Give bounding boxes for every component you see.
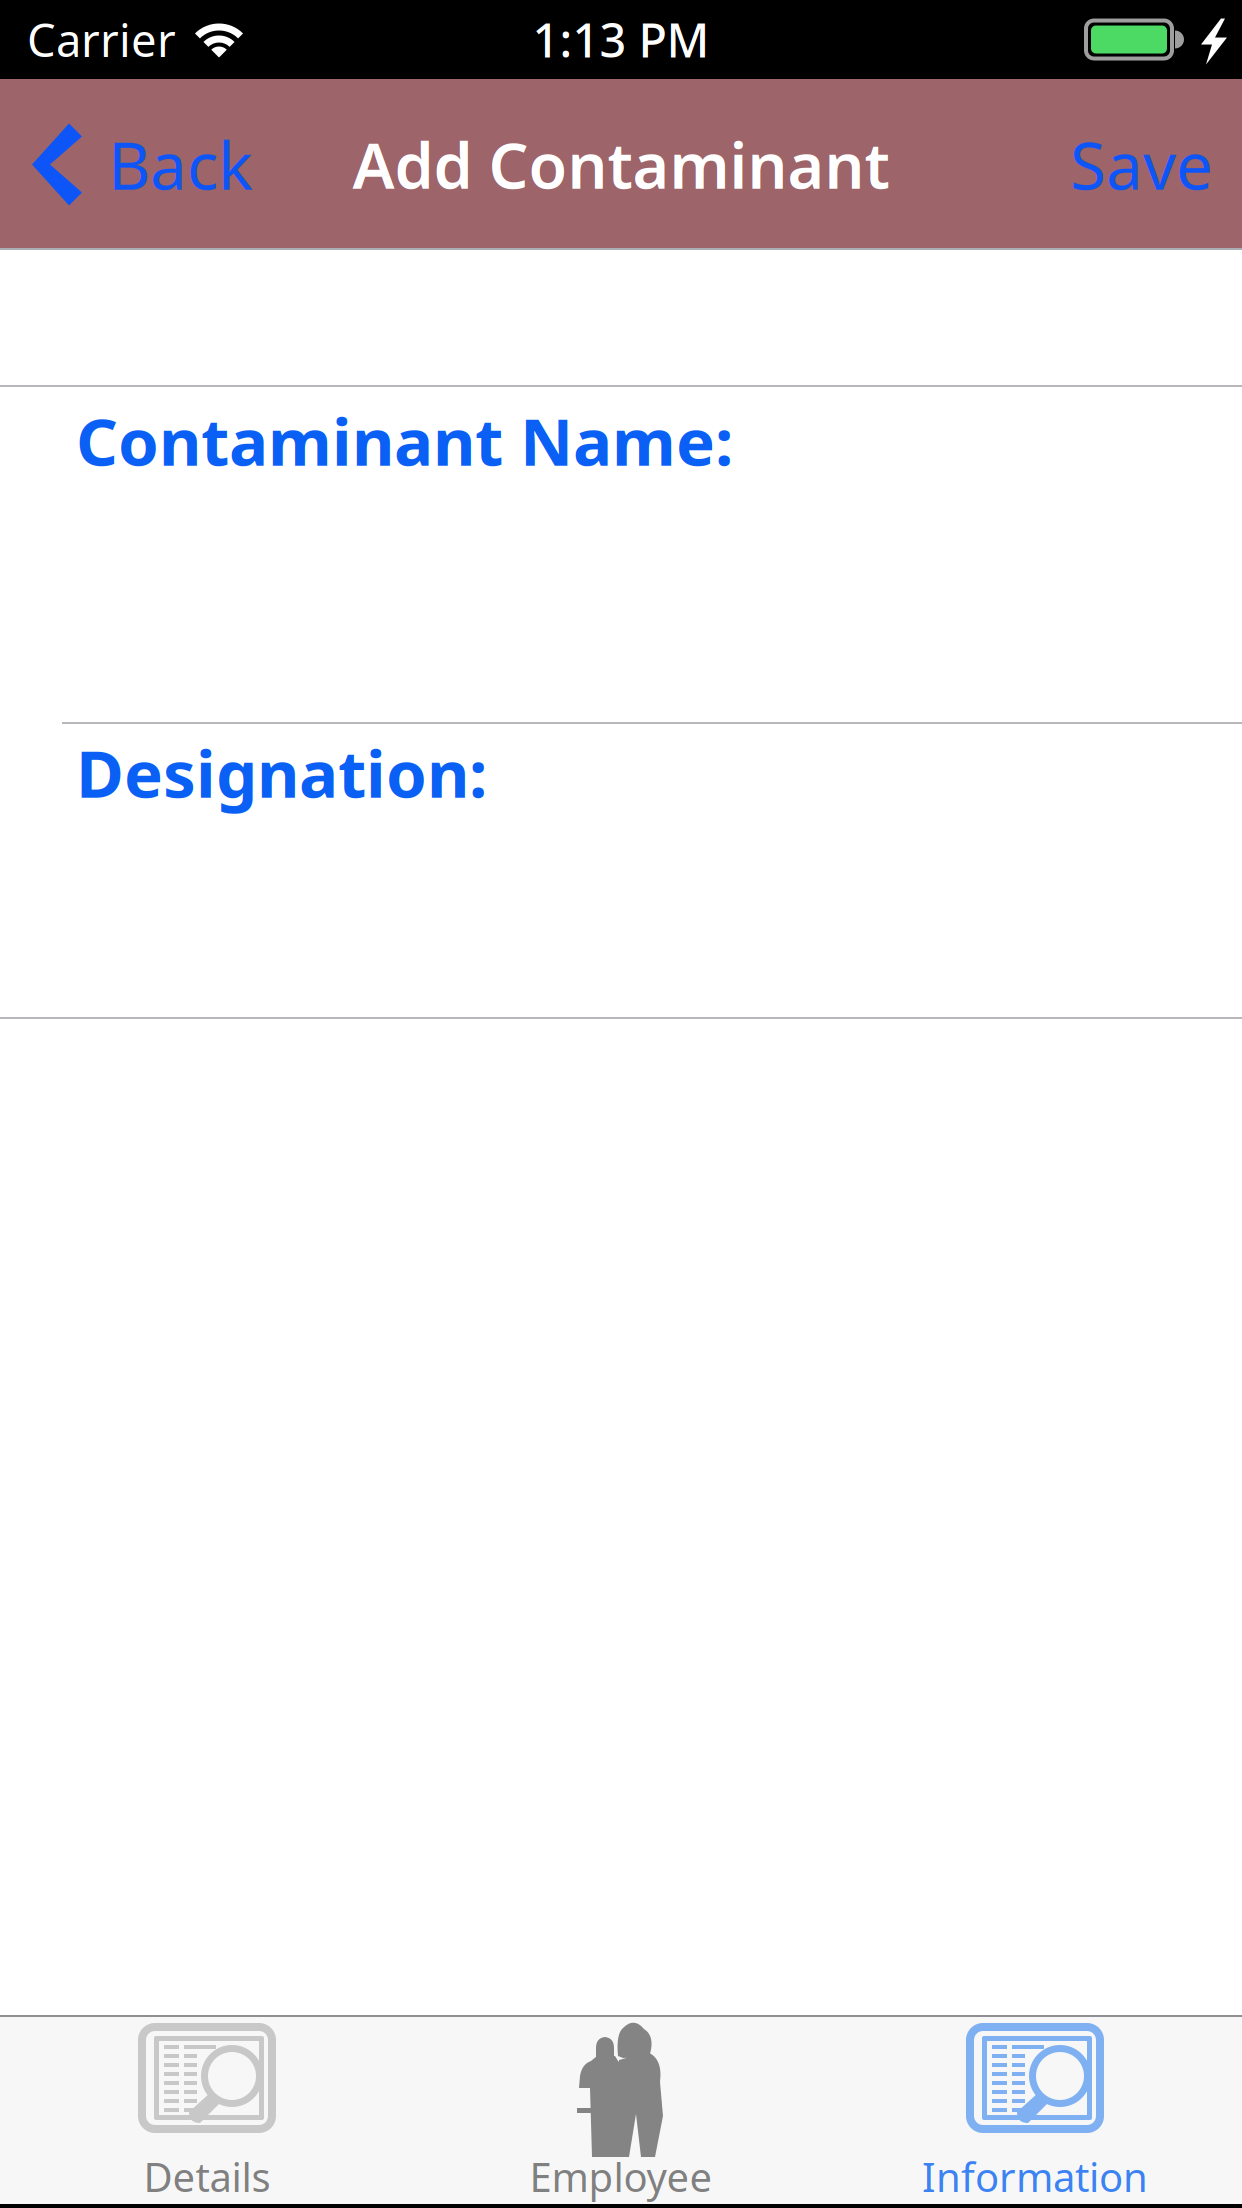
button[interactable]: Designation: [0, 724, 1242, 1017]
staticText: Carrier [27, 9, 176, 70]
staticText: Information [922, 2150, 1148, 2203]
button[interactable]: Information [828, 2017, 1242, 2204]
button[interactable]: Save [1050, 80, 1242, 249]
staticText: Save [1070, 121, 1213, 208]
button[interactable]: Back [0, 80, 273, 249]
button[interactable]: Details [0, 2017, 414, 2204]
button[interactable]: Employee [414, 2017, 828, 2204]
staticText: Details [143, 2150, 270, 2203]
staticText: Back [108, 121, 253, 208]
staticText: Designation: [76, 729, 487, 816]
staticText: 1:13 PM [532, 8, 709, 70]
staticText: Contaminant Name: [76, 397, 733, 484]
staticText: Add Contaminant [352, 123, 889, 206]
button[interactable]: Contaminant Name: [0, 387, 1242, 722]
staticText: Employee [529, 2150, 712, 2203]
